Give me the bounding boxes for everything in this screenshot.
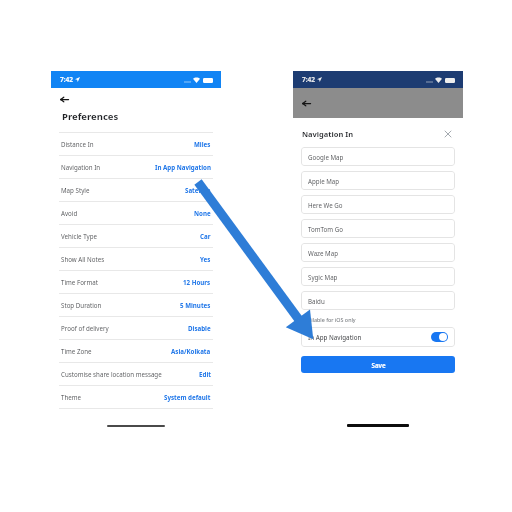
staticText: Edit: [199, 370, 211, 378]
staticText: Car: [200, 232, 211, 240]
button[interactable]: Time Format: [51, 271, 221, 293]
staticText: In App Navigation: [155, 163, 211, 171]
button[interactable]: Stop Duration: [51, 294, 221, 316]
button[interactable]: Baidu: [301, 291, 455, 310]
staticText: Sygic Map: [308, 273, 338, 281]
staticText: Theme: [61, 393, 82, 401]
button[interactable]: Save: [301, 356, 455, 373]
staticText: Waze Map: [308, 249, 338, 257]
button[interactable]: Back: [51, 88, 221, 110]
button[interactable]: Back: [293, 88, 463, 118]
staticText: Navigation In: [302, 129, 354, 139]
staticText: 12 Hours: [183, 278, 211, 286]
staticText: Preferences: [62, 110, 119, 123]
staticText: Baidu: [308, 297, 325, 305]
staticText: Map Style: [61, 186, 90, 194]
button[interactable]: TomTom Go: [301, 219, 455, 238]
button[interactable]: Avoid: [51, 202, 221, 224]
staticText: None: [194, 209, 211, 217]
button[interactable]: Waze Map: [301, 243, 455, 262]
staticText: Vehicle Type: [61, 232, 97, 240]
staticText: 5 Minutes: [180, 301, 211, 309]
button[interactable]: Here We Go: [301, 195, 455, 214]
staticText: Disable: [188, 324, 211, 332]
staticText: Yes: [200, 255, 211, 263]
staticText: Save: [371, 361, 386, 369]
staticText: Time Format: [61, 278, 98, 286]
staticText: 7:42: [302, 75, 315, 84]
staticText: 7:42: [60, 75, 73, 84]
staticText: Proof of delivery: [61, 324, 109, 332]
staticText: Google Map: [308, 153, 344, 161]
staticText: Stop Duration: [61, 301, 102, 309]
staticText: Avoid: [61, 209, 78, 217]
staticText: Miles: [194, 140, 211, 148]
button[interactable]: Google Map: [301, 147, 455, 166]
button[interactable]: Theme: [51, 386, 221, 408]
staticText: Apple Map: [308, 177, 340, 185]
button[interactable]: Sygic Map: [301, 267, 455, 286]
staticText: In App Navigation: [308, 333, 362, 341]
button[interactable]: Apple Map: [301, 171, 455, 190]
staticText: Show All Notes: [61, 255, 105, 263]
button[interactable]: Customise share location message: [51, 363, 221, 385]
staticText: Customise share location message: [61, 370, 162, 378]
button[interactable]: Proof of delivery: [51, 317, 221, 339]
staticText: Here We Go: [308, 201, 343, 209]
staticText: TomTom Go: [308, 225, 343, 233]
button[interactable]: Show All Notes: [51, 248, 221, 270]
button[interactable]: Distance In: [51, 133, 221, 155]
button[interactable]: Close: [442, 128, 454, 140]
button[interactable]: Navigation In: [51, 156, 221, 178]
button[interactable]: Map Style: [51, 179, 221, 201]
staticText: Asia/Kolkata: [171, 347, 211, 355]
button[interactable]: Time Zone: [51, 340, 221, 362]
button[interactable]: In App Navigation: [301, 327, 455, 347]
button[interactable]: Vehicle Type: [51, 225, 221, 247]
staticText: Navigation In: [61, 163, 101, 171]
staticText: Available for iOS only: [302, 316, 356, 323]
staticText: Satellite: [185, 186, 211, 194]
staticText: Time Zone: [61, 347, 92, 355]
staticText: System default: [164, 393, 211, 401]
staticText: Distance In: [61, 140, 94, 148]
